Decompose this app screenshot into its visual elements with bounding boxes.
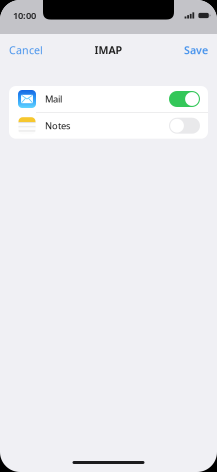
staticText: Cancel	[9, 43, 43, 57]
button[interactable]: Notes	[9, 113, 208, 139]
staticText: IMAP	[94, 43, 122, 57]
button[interactable]: Mail	[9, 86, 208, 112]
staticText: Mail	[45, 93, 62, 105]
staticText: Notes	[45, 119, 70, 132]
staticText: Save	[184, 43, 208, 57]
staticText: 10:00	[13, 9, 36, 22]
button[interactable]: Cancel	[0, 34, 52, 66]
button[interactable]: Save	[175, 34, 217, 66]
